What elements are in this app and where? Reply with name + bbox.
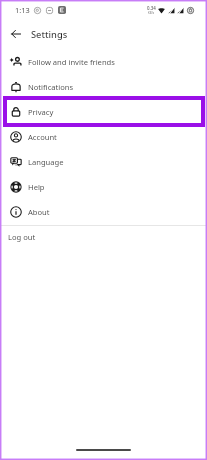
staticText: About xyxy=(28,207,50,217)
staticText: 1:13 xyxy=(15,5,30,15)
staticText: Notifications xyxy=(28,82,74,92)
staticText: Help xyxy=(28,182,45,192)
button[interactable]: Language xyxy=(0,149,207,174)
button[interactable]: Back xyxy=(0,20,31,48)
button[interactable]: Follow and invite friends xyxy=(0,49,207,74)
button[interactable]: About xyxy=(0,199,207,224)
staticText: Privacy xyxy=(28,107,54,117)
staticText: Language xyxy=(28,157,64,167)
button[interactable]: Notifications xyxy=(0,74,207,99)
button[interactable]: Log out xyxy=(0,226,207,248)
staticText: 0.34 xyxy=(147,5,156,11)
button[interactable]: Help xyxy=(0,174,207,199)
staticText: Follow and invite friends xyxy=(28,57,115,67)
staticText: Account xyxy=(28,132,57,142)
staticText: Log out xyxy=(8,232,36,242)
staticText: Settings xyxy=(31,28,68,41)
button[interactable]: Account xyxy=(0,124,207,149)
staticText: KB/s xyxy=(148,11,155,15)
button[interactable]: Privacy xyxy=(0,99,207,124)
